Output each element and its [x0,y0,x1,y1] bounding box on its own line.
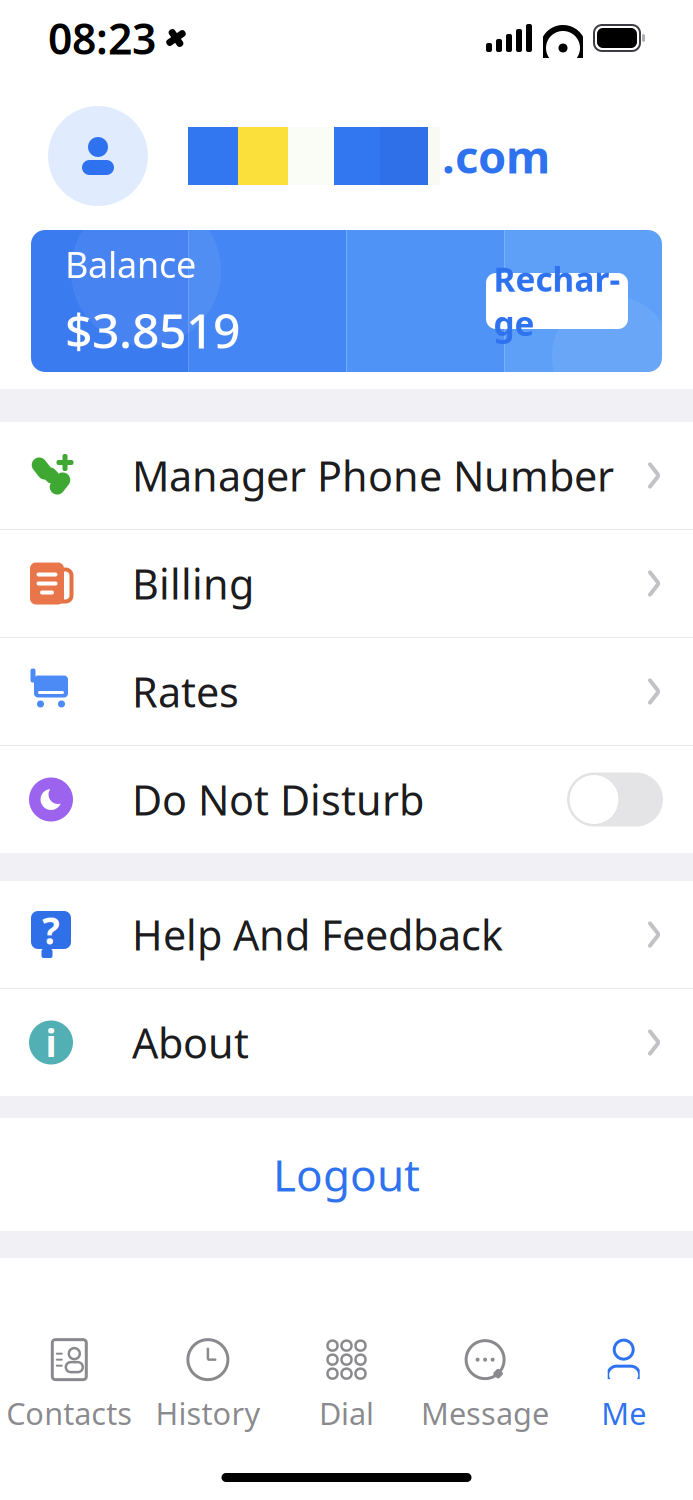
button[interactable]: i [0,989,693,1096]
staticText: Contacts [6,1393,132,1433]
button[interactable]: Do Not Disturb [0,746,693,853]
staticText: Message [421,1393,549,1433]
button[interactable]: Rates [0,638,693,745]
button[interactable]: Dial [277,1330,416,1440]
button[interactable]: Contacts [0,1330,139,1440]
button[interactable]: Logout [0,1118,693,1231]
staticText: i [45,1018,56,1067]
staticText: 08:23 [48,10,156,66]
staticText: Recharge [493,257,620,345]
staticText: Manager Phone Number [132,448,614,503]
staticText: Dial [319,1393,374,1433]
staticText: About [132,1015,249,1070]
staticText: Help And Feedback [132,907,503,962]
staticText: History [155,1393,260,1433]
staticText: Balance [65,240,196,288]
staticText: $3.8519 [65,298,240,362]
staticText: Logout [273,1145,420,1204]
staticText: Rates [132,664,239,719]
button[interactable]: Message [416,1330,554,1440]
button[interactable]: 📞 [0,422,693,529]
staticText: Billing [132,556,254,611]
button[interactable]: ? [0,881,693,988]
button[interactable]: Recharge [486,273,628,329]
button[interactable]: Billing [0,530,693,637]
staticText: Me [601,1393,646,1433]
staticText: ? [42,905,60,955]
staticText: Do Not Disturb [132,772,424,827]
button[interactable]: Me [554,1330,693,1440]
staticText: .com [442,126,550,186]
button[interactable]: History [139,1330,277,1440]
